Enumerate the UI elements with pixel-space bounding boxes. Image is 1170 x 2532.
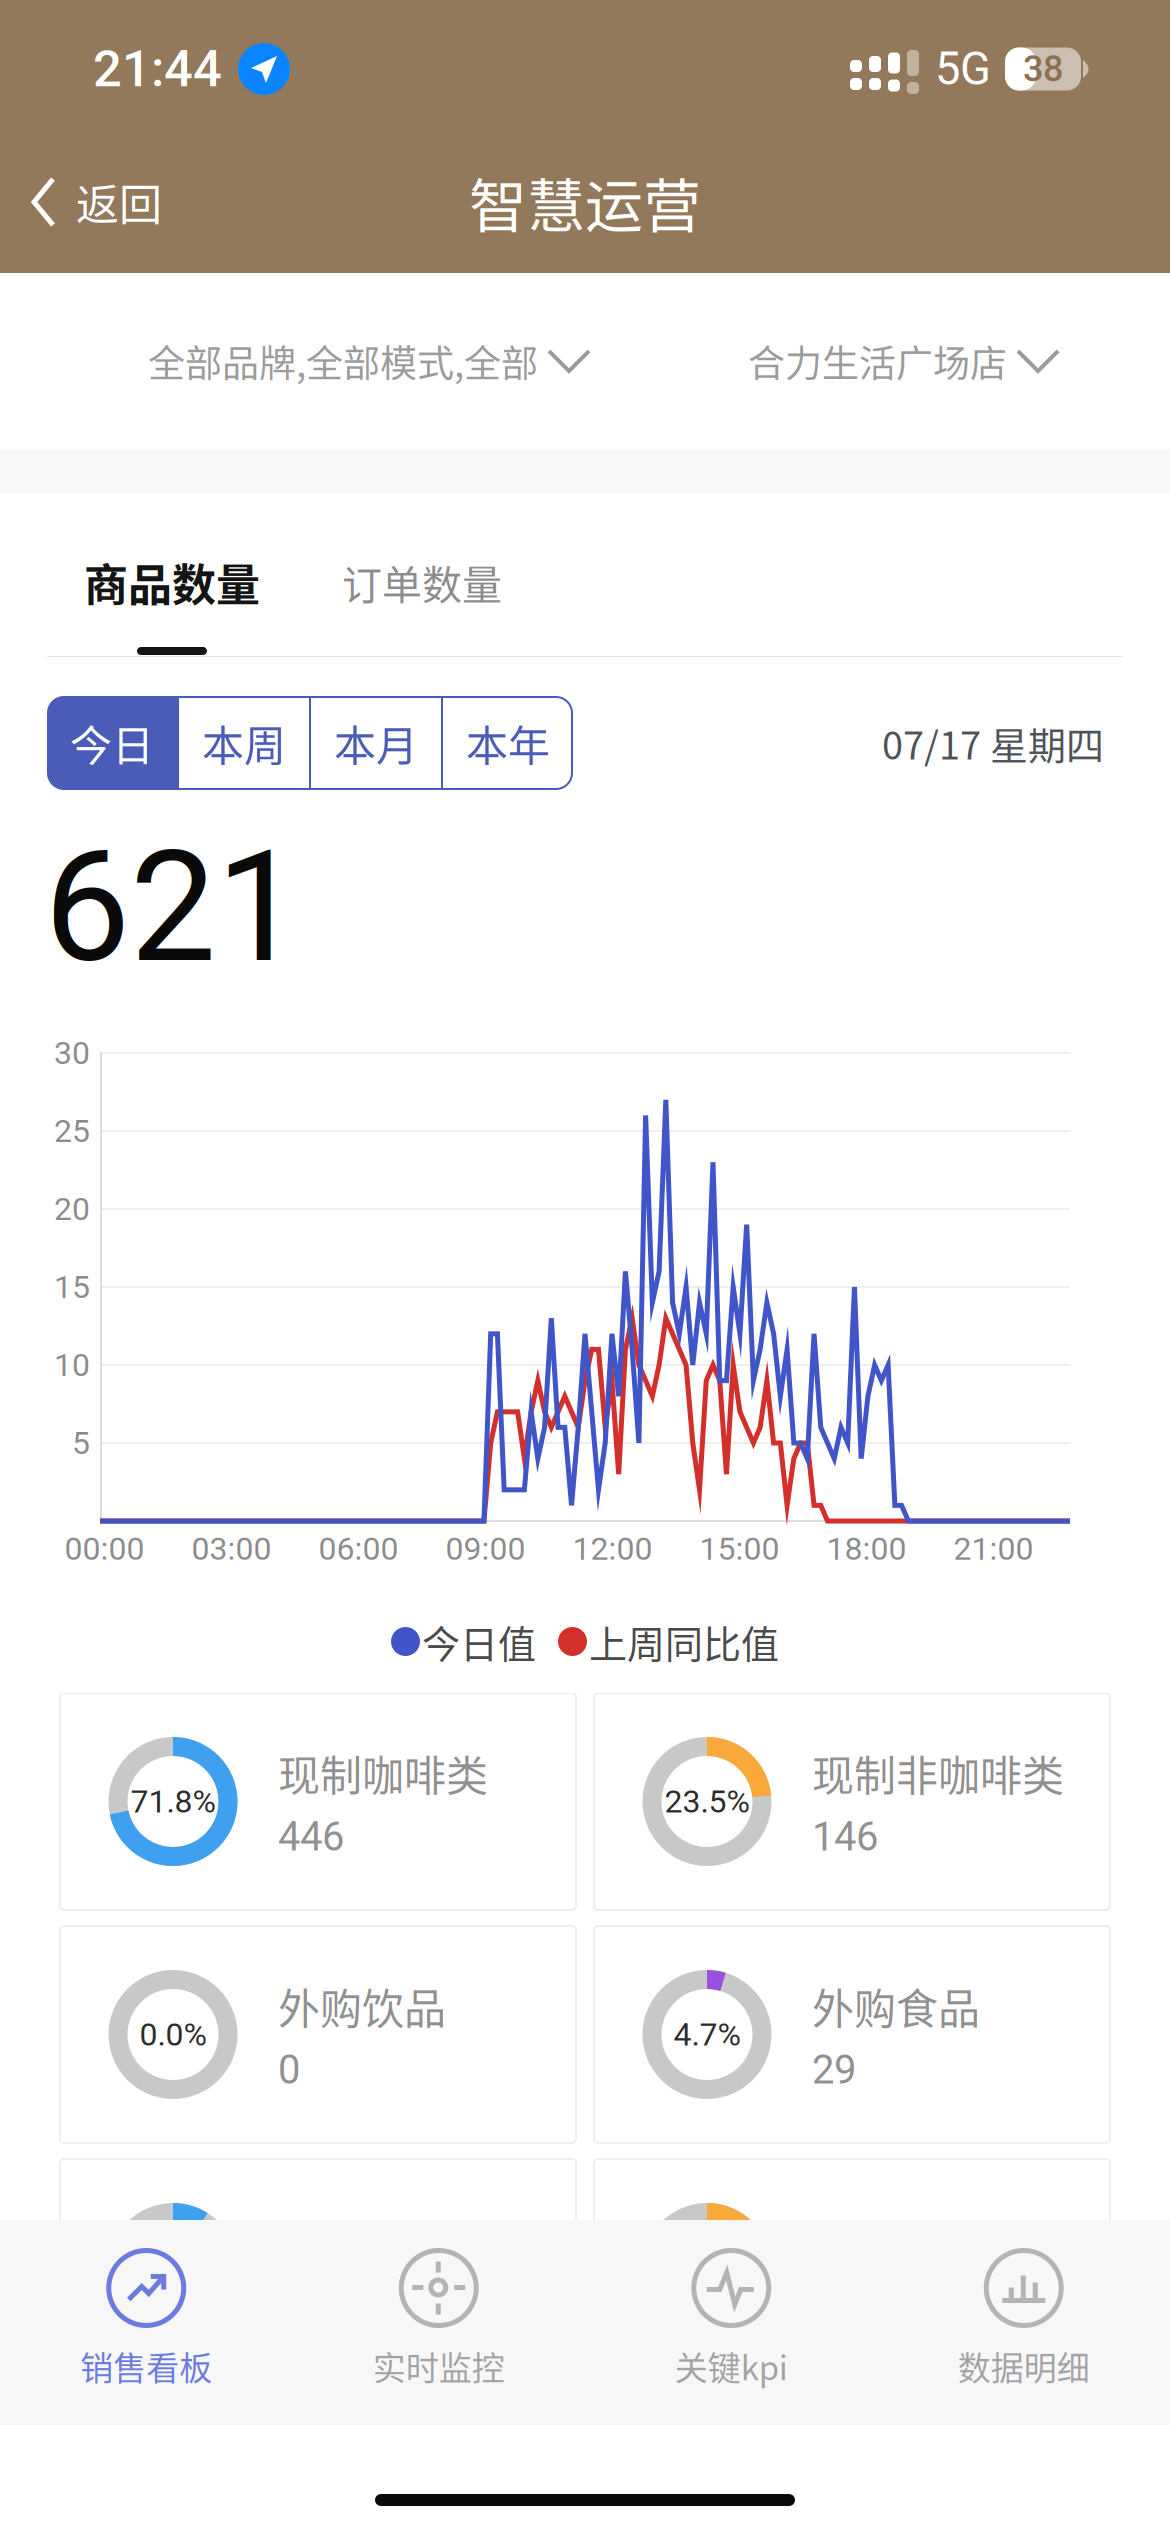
staticText: 商品数量	[84, 550, 260, 614]
staticText: 21:00	[953, 1530, 1033, 1567]
staticText: 621	[44, 818, 302, 997]
button[interactable]: 实时监控	[292, 2220, 585, 2425]
button[interactable]: 关键kpi	[585, 2220, 877, 2425]
staticText: 今日值	[422, 1614, 536, 1669]
staticText: 23.5%	[664, 1783, 749, 1820]
staticText: 38	[1023, 48, 1063, 90]
button[interactable]: 21%	[594, 2159, 1110, 2376]
button[interactable]: 全部品牌,全部模式,全部	[0, 273, 603, 449]
button[interactable]: 23.5%	[594, 1693, 1110, 1910]
staticText: 外购食品	[812, 1976, 980, 2036]
staticText: 21:44	[93, 39, 222, 99]
staticText: 00:00	[64, 1530, 144, 1567]
staticText: 18:00	[826, 1530, 906, 1567]
staticText: 智慧运营	[469, 160, 701, 244]
staticText: 9.0%	[139, 2249, 206, 2286]
staticText: 瑞幸达调	[812, 2209, 980, 2269]
staticText: 数据明细	[958, 2342, 1090, 2390]
staticText: 06:00	[318, 1530, 398, 1567]
staticText: 实时监控	[373, 2342, 505, 2390]
staticText: 周边商品	[278, 2209, 446, 2269]
staticText: 销售看板	[80, 2342, 212, 2390]
button[interactable]: 本周	[179, 697, 309, 789]
staticText: 5	[72, 1424, 90, 1462]
button[interactable]: 9.0%	[60, 2159, 576, 2376]
staticText: 现制咖啡类	[278, 1743, 488, 1803]
staticText: 合力生活广场店	[748, 334, 1007, 388]
staticText: 0	[278, 2046, 300, 2093]
button[interactable]: 返回	[0, 138, 186, 266]
staticText: 现制非咖啡类	[812, 1743, 1064, 1803]
staticText: 关键kpi	[675, 2342, 788, 2390]
staticText: 4.7%	[673, 2016, 740, 2053]
staticText: 5G	[935, 42, 991, 95]
staticText: 21%	[677, 2249, 736, 2286]
staticText: 15:00	[699, 1530, 779, 1567]
staticText: 12:00	[572, 1530, 652, 1567]
staticText: 订单数量	[342, 553, 502, 611]
staticText: 03:00	[191, 1530, 271, 1567]
staticText: 全部品牌,全部模式,全部	[148, 334, 538, 388]
button[interactable]: 销售看板	[0, 2220, 292, 2425]
staticText: 15	[54, 1268, 90, 1306]
staticText: 30	[54, 1034, 90, 1072]
staticText: 本年	[466, 713, 550, 773]
button[interactable]: 本年	[443, 697, 573, 789]
staticText: 本周	[202, 713, 286, 773]
button[interactable]: 数据明细	[877, 2220, 1170, 2425]
button[interactable]: 商品数量	[0, 517, 316, 647]
staticText: 29	[812, 2046, 856, 2093]
staticText: 外购饮品	[278, 1976, 446, 2036]
staticText: 146	[812, 1813, 878, 1860]
button[interactable]: 4.7%	[594, 1926, 1110, 2143]
staticText: 25	[54, 1112, 90, 1150]
staticText: 上周同比值	[589, 1614, 779, 1669]
button[interactable]: 0.0%	[60, 1926, 576, 2143]
button[interactable]: 今日	[47, 697, 177, 789]
button[interactable]: 71.8%	[60, 1693, 576, 1910]
staticText: 0.0%	[139, 2016, 206, 2053]
button[interactable]: 订单数量	[316, 517, 528, 647]
button[interactable]: 合力生活广场店	[748, 273, 1170, 449]
staticText: 71.8%	[130, 1783, 215, 1820]
staticText: 本月	[334, 713, 418, 773]
staticText: 07/17 星期四	[882, 715, 1104, 770]
staticText: 446	[278, 1813, 344, 1860]
staticText: 09:00	[445, 1530, 525, 1567]
staticText: 返回	[76, 171, 162, 233]
staticText: 今日	[70, 713, 154, 773]
staticText: 20	[54, 1190, 90, 1228]
staticText: 10	[54, 1346, 90, 1384]
button[interactable]: 本月	[311, 697, 441, 789]
